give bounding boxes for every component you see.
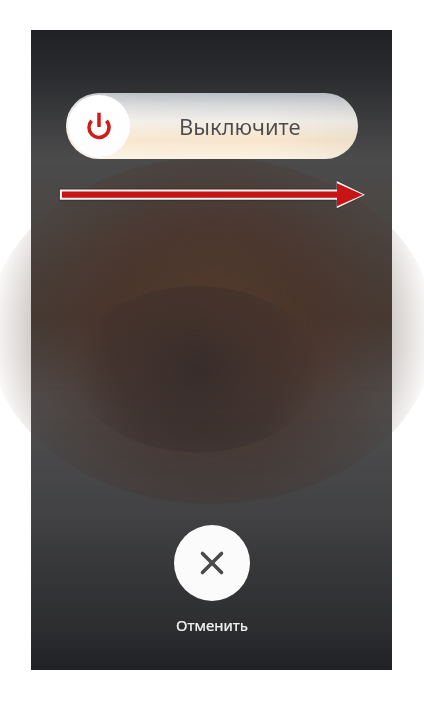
button[interactable]: Отменить <box>174 525 250 601</box>
staticText: Отменить <box>176 615 248 635</box>
staticText: Выключите <box>179 111 301 141</box>
button[interactable]: Выключите <box>66 93 358 159</box>
